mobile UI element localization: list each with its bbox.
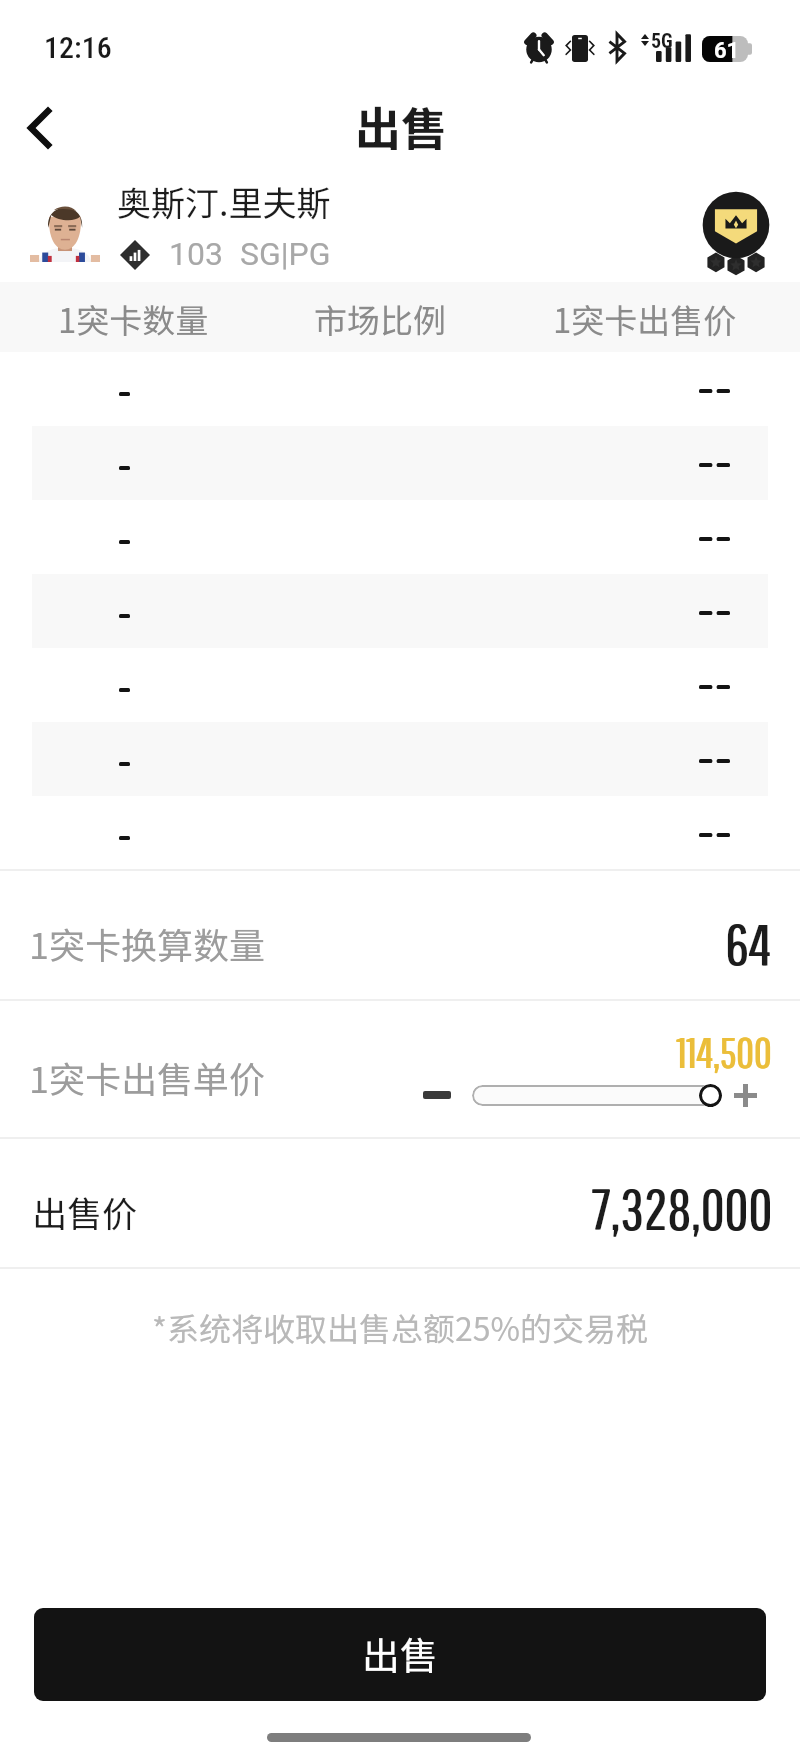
button[interactable]: 1突卡数量 [0,282,283,352]
button[interactable]: Increase price [719,1069,771,1121]
button[interactable] [0,722,800,796]
staticText: 1突卡出售价 [553,295,737,343]
staticText: 64 [725,910,771,977]
button[interactable]: 市场比例 [230,282,530,352]
staticText: 1突卡数量 [58,295,209,343]
staticText: 7,328,000 [591,1175,772,1242]
staticText: 64 [726,910,772,977]
button[interactable]: 1突卡出售价 [495,282,795,352]
button[interactable]: Decrease price [410,1069,464,1121]
staticText: 出售 [362,1626,439,1681]
button[interactable] [0,574,800,648]
button[interactable] [0,426,800,500]
staticText: 114,500 [676,1027,772,1077]
staticText: 出售价 [32,1186,138,1237]
button[interactable]: Back [6,86,86,172]
staticText: 市场比例 [314,295,446,343]
button[interactable] [0,648,800,722]
staticText: 7,328,000 [592,1175,773,1242]
button[interactable] [0,796,800,870]
staticText: 奥斯汀.里夫斯 [117,177,331,226]
button[interactable]: Price slider [472,1085,715,1106]
staticText: 12:16 [44,30,112,65]
staticText: 61 [714,38,740,64]
button[interactable]: 出售 [34,1608,766,1701]
button[interactable] [0,500,800,574]
staticText: 1突卡换算数量 [29,917,265,969]
staticText: 1突卡出售单价 [29,1051,265,1103]
staticText: 5G [651,29,673,52]
button[interactable]: 1突卡换算数量 [0,871,800,999]
staticText: 114,500 [677,1027,773,1077]
button[interactable] [0,352,800,426]
staticText: 103 [169,235,223,273]
staticText: *系统将收取出售总额25%的交易税 [0,1304,800,1350]
staticText: SG|PG [240,235,331,273]
staticText: 出售 [355,93,447,160]
